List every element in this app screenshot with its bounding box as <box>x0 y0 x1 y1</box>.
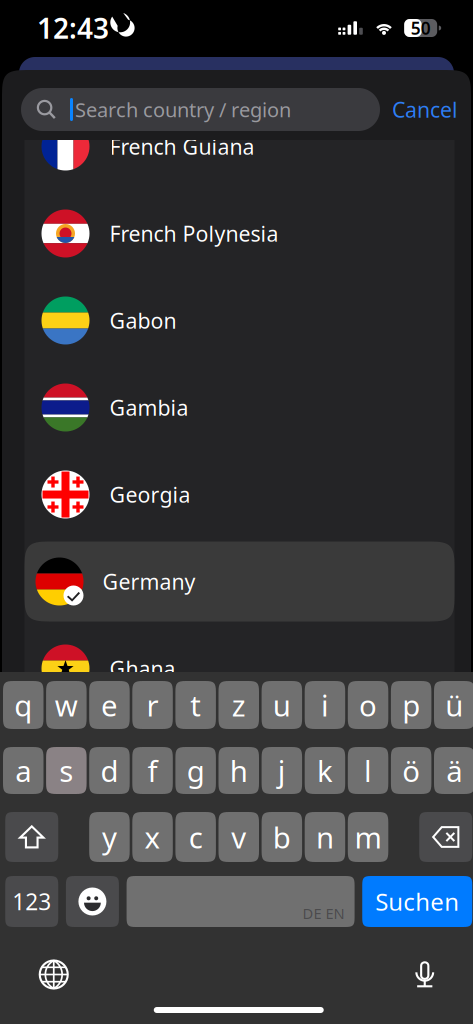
button[interactable]: y <box>89 812 130 862</box>
button[interactable]: Gabon <box>24 277 454 364</box>
button[interactable]: Ghana <box>24 625 454 712</box>
button[interactable]: d <box>89 747 130 794</box>
staticText: w <box>55 685 78 724</box>
button[interactable]: n <box>305 812 345 862</box>
button[interactable]: c <box>175 812 216 862</box>
staticText: m <box>355 817 382 856</box>
staticText: ö <box>402 751 420 790</box>
staticText: u <box>273 685 291 724</box>
button[interactable]: Cancel <box>380 88 473 131</box>
button[interactable]: Shift <box>5 812 58 862</box>
staticText: r <box>147 685 159 724</box>
button[interactable]: French Guiana <box>24 103 454 190</box>
staticText: Ghana <box>109 654 175 683</box>
button[interactable]: p <box>391 681 431 729</box>
staticText: a <box>15 751 31 790</box>
button[interactable]: Space <box>127 876 355 927</box>
button[interactable]: French Polynesia <box>24 190 454 277</box>
staticText: s <box>59 751 73 790</box>
button[interactable]: k <box>305 747 345 794</box>
staticText: Georgia <box>109 480 190 509</box>
staticText: o <box>359 685 377 724</box>
button[interactable]: f <box>132 747 173 794</box>
button[interactable]: i <box>305 681 345 729</box>
staticText: French Polynesia <box>109 219 278 248</box>
staticText: q <box>14 685 32 724</box>
staticText: f <box>148 751 158 790</box>
button[interactable]: r <box>132 681 173 729</box>
staticText: t <box>190 685 201 724</box>
staticText: Suchen <box>375 886 459 917</box>
button[interactable]: Dictate <box>411 959 438 989</box>
button[interactable]: q <box>3 681 43 729</box>
button[interactable]: Emoji <box>66 876 119 927</box>
button[interactable]: Germany <box>24 538 454 625</box>
button[interactable]: ö <box>391 747 431 794</box>
staticText: c <box>189 817 203 856</box>
staticText: i <box>321 685 329 724</box>
staticText: 123 <box>12 886 51 916</box>
button[interactable]: w <box>46 681 87 729</box>
staticText: l <box>364 751 372 790</box>
staticText: y <box>102 817 117 856</box>
staticText: d <box>100 751 118 790</box>
staticText: k <box>317 751 333 790</box>
staticText: Cancel <box>392 95 458 124</box>
button[interactable]: Delete <box>419 812 472 862</box>
staticText: g <box>187 751 205 790</box>
button[interactable]: x <box>132 812 173 862</box>
button[interactable]: m <box>348 812 388 862</box>
staticText: v <box>231 817 246 856</box>
button[interactable]: z <box>218 681 259 729</box>
staticText: b <box>273 817 291 856</box>
button[interactable]: j <box>262 747 302 794</box>
staticText: h <box>230 751 248 790</box>
button[interactable]: 123 <box>5 876 58 927</box>
button[interactable]: ä <box>434 747 473 794</box>
staticText: j <box>278 751 286 790</box>
button[interactable]: Georgia <box>24 451 454 538</box>
button[interactable]: g <box>175 747 216 794</box>
button[interactable]: h <box>218 747 259 794</box>
staticText: Gabon <box>109 306 176 335</box>
staticText: ä <box>446 751 462 790</box>
button[interactable]: l <box>348 747 388 794</box>
staticText: DE EN <box>303 903 345 923</box>
staticText: French Guiana <box>109 132 254 161</box>
button[interactable]: Switch keyboard <box>38 959 69 990</box>
button[interactable]: t <box>175 681 216 729</box>
staticText: x <box>144 817 160 856</box>
button[interactable]: e <box>89 681 130 729</box>
staticText: e <box>101 685 118 724</box>
button[interactable]: s <box>46 747 87 794</box>
button[interactable]: ü <box>434 681 473 729</box>
staticText: Gambia <box>109 393 188 422</box>
button[interactable]: b <box>262 812 302 862</box>
staticText: Search country / region <box>75 96 291 123</box>
button[interactable]: o <box>348 681 388 729</box>
staticText: n <box>316 817 334 856</box>
button[interactable]: Suchen <box>362 876 472 927</box>
staticText: Germany <box>102 567 195 596</box>
staticText: z <box>232 685 246 724</box>
button[interactable]: v <box>218 812 259 862</box>
button[interactable]: u <box>262 681 302 729</box>
staticText: p <box>402 685 420 724</box>
button[interactable]: Gambia <box>24 364 454 451</box>
button[interactable]: a <box>3 747 43 794</box>
staticText: ü <box>445 685 463 724</box>
staticText: 12:43 <box>37 9 109 47</box>
staticText: 50 <box>411 16 431 39</box>
